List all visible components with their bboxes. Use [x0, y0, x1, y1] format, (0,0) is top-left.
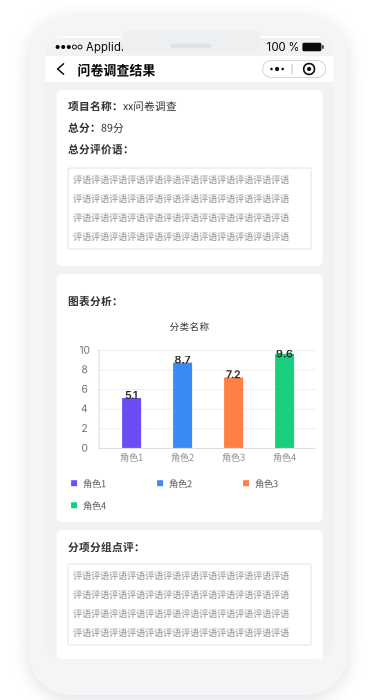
staticText: 5.1 — [125, 389, 138, 401]
staticText: 评语评语评语评语评语评语评语评语评语评语评语评语 — [73, 625, 289, 639]
staticText: 角色2 — [169, 476, 192, 490]
staticText: 角色4 — [83, 498, 106, 512]
staticText: 4 — [81, 403, 88, 415]
staticText: 分类名称 — [170, 319, 210, 333]
staticText: 评语评语评语评语评语评语评语评语评语评语评语评语 — [73, 587, 289, 601]
staticText: 7.2 — [226, 368, 241, 381]
staticText: Applidiu — [86, 40, 131, 54]
staticText: 8 — [82, 363, 88, 376]
staticText: xx问卷调查 — [123, 98, 177, 113]
button[interactable]: Back — [46, 55, 77, 83]
staticText: 9.6 — [276, 347, 293, 360]
staticText: 8.7 — [175, 353, 191, 366]
staticText: 89分 — [101, 119, 124, 135]
staticText: 10 — [80, 344, 90, 356]
staticText: 图表分析： — [68, 293, 123, 308]
staticText: 角色4 — [273, 450, 296, 463]
staticText: 评语评语评语评语评语评语评语评语评语评语评语评语 — [73, 172, 289, 186]
staticText: 角色3 — [222, 450, 245, 463]
staticText: 2 — [82, 422, 88, 434]
staticText: 总分： — [68, 119, 101, 135]
staticText: 评语评语评语评语评语评语评语评语评语评语评语评语 — [73, 210, 289, 224]
staticText: 评语评语评语评语评语评语评语评语评语评语评语评语 — [73, 191, 289, 205]
staticText: 评语评语评语评语评语评语评语评语评语评语评语评语 — [73, 606, 289, 620]
staticText: 角色1 — [83, 476, 106, 490]
staticText: 总分评价语： — [68, 141, 134, 156]
staticText: 角色2 — [171, 450, 194, 463]
staticText: 0 — [82, 442, 88, 454]
button[interactable]: More and close — [263, 60, 334, 77]
staticText: 项目名称： — [68, 98, 123, 113]
staticText: 100 % — [266, 40, 299, 54]
staticText: 6 — [82, 383, 88, 395]
staticText: 分项分组点评： — [68, 539, 145, 554]
staticText: 评语评语评语评语评语评语评语评语评语评语评语评语 — [73, 229, 289, 243]
staticText: 评语评语评语评语评语评语评语评语评语评语评语评语 — [73, 568, 289, 582]
staticText: 问卷调查结果 — [78, 60, 156, 78]
staticText: 角色1 — [120, 450, 143, 463]
staticText: 角色3 — [255, 476, 278, 490]
